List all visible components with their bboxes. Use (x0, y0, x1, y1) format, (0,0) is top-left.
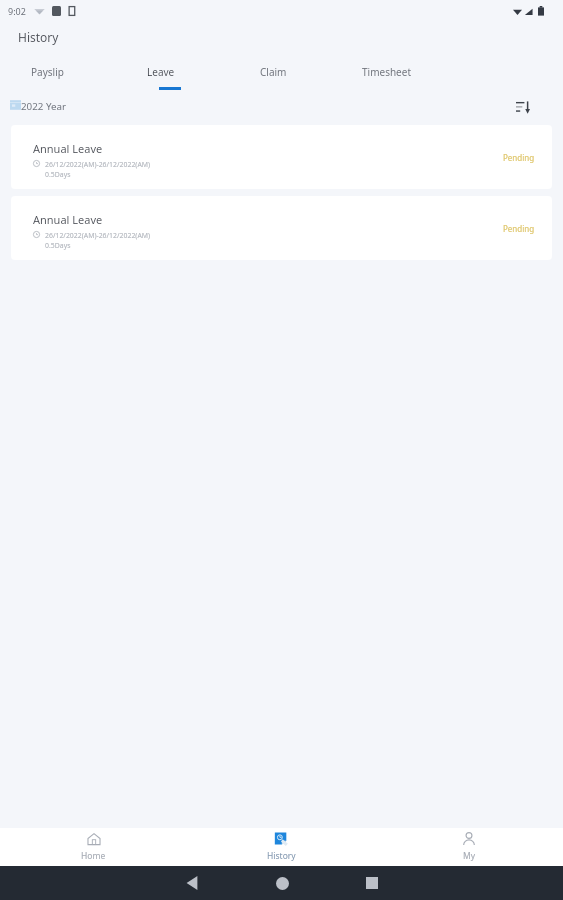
staticText: Payslip (31, 65, 64, 79)
button[interactable]: Back (172, 866, 212, 900)
staticText: 2022 Year (21, 100, 67, 113)
button[interactable]: Payslip (0, 51, 104, 93)
staticText: History (18, 29, 59, 45)
staticText: History (267, 850, 296, 862)
staticText: Pending (503, 152, 535, 163)
button[interactable]: Annual Leave (11, 125, 552, 189)
button[interactable]: History (187, 828, 375, 866)
staticText: 0.5Days (45, 241, 71, 250)
button[interactable]: Home (0, 828, 187, 866)
staticText: 26/12/2022(AM)-26/12/2022(AM) (45, 160, 151, 169)
staticText: Pending (503, 223, 535, 234)
staticText: Annual Leave (33, 141, 103, 156)
button[interactable]: My (375, 828, 563, 866)
staticText: Annual Leave (33, 212, 103, 227)
staticText: Leave (147, 65, 175, 79)
staticText: Claim (260, 65, 287, 79)
button[interactable]: Recent apps (352, 866, 392, 900)
staticText: 9:02 (8, 5, 26, 17)
staticText: My (463, 850, 476, 862)
staticText: Timesheet (362, 65, 411, 79)
button[interactable]: Home (262, 866, 302, 900)
button[interactable]: Leave (104, 51, 217, 93)
staticText: 0.5Days (45, 170, 71, 179)
button[interactable]: Timesheet (330, 51, 443, 93)
button[interactable]: Annual Leave (11, 196, 552, 260)
staticText: 26/12/2022(AM)-26/12/2022(AM) (45, 231, 151, 240)
staticText: Home (81, 850, 106, 862)
button[interactable]: Sort (512, 96, 534, 118)
button[interactable]: Claim (217, 51, 330, 93)
